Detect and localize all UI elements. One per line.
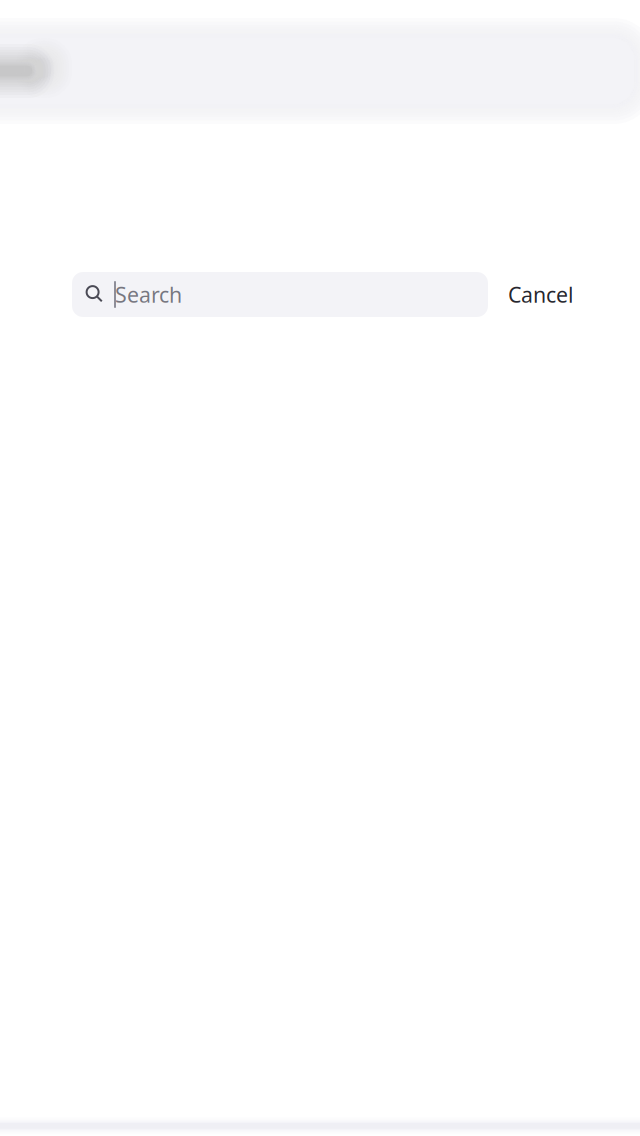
staticText: Search <box>115 280 182 309</box>
button[interactable]: Search <box>72 272 488 317</box>
staticText: Cancel <box>508 280 574 309</box>
button[interactable]: Cancel <box>488 272 590 317</box>
